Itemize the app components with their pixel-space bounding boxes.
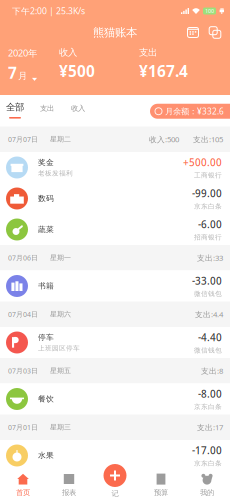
button[interactable]: 切换账本 (209, 26, 221, 38)
staticText: 收入:500 (149, 134, 179, 144)
staticText: 老板发福利 (38, 169, 73, 178)
button[interactable]: 支出 (32, 95, 62, 126)
staticText: 07月07日 (8, 134, 38, 144)
staticText: 07月03日 (8, 366, 38, 375)
staticText: 下午2:00 | 25.3K/s (12, 5, 85, 17)
staticText: 星期六 (50, 310, 71, 319)
button[interactable]: 首页 (0, 470, 46, 500)
staticText: 收入 (59, 47, 77, 58)
staticText: 水果 (38, 451, 54, 460)
staticText: 支出:4.4 (195, 309, 223, 319)
button[interactable]: 我的 (184, 470, 230, 500)
staticText: 100 (205, 7, 214, 15)
staticText: 微信钱包 (194, 290, 222, 298)
staticText: 记 (111, 489, 118, 498)
staticText: 7 (8, 62, 17, 83)
staticText: 2020年 (8, 47, 37, 59)
staticText: 上班园区停车 (38, 344, 80, 353)
staticText: 星期二 (50, 135, 71, 144)
button[interactable]: 2020年 (8, 47, 59, 83)
staticText: 报表 (62, 488, 76, 497)
staticText: 支出:17 (197, 422, 223, 432)
button[interactable]: 全部 (5, 95, 25, 126)
staticText: -4.40 (198, 330, 222, 344)
staticText: 数码 (38, 194, 54, 203)
staticText: 支出:33 (197, 252, 223, 263)
button[interactable]: 停车 (0, 327, 230, 358)
staticText: 停车 (38, 332, 54, 342)
button[interactable]: 预算 (138, 470, 184, 500)
button[interactable]: 月余额：¥332.6 (150, 104, 230, 119)
staticText: 星期五 (50, 366, 71, 375)
staticText: -8.00 (198, 387, 222, 400)
button[interactable]: 奖金 (0, 152, 230, 183)
button[interactable]: 收入 (63, 95, 93, 126)
button[interactable]: 记一笔 (92, 470, 138, 500)
staticText: -6.00 (198, 217, 222, 231)
staticText: ¥500 (59, 60, 95, 81)
staticText: 支出 (40, 104, 54, 113)
staticText: 支出 (139, 47, 157, 58)
staticText: -99.00 (192, 186, 222, 200)
staticText: +500.00 (183, 155, 222, 169)
staticText: 首页 (16, 488, 30, 497)
staticText: 京东白条 (194, 459, 222, 467)
staticText: 星期三 (50, 423, 71, 432)
staticText: 微信钱包 (194, 346, 222, 354)
button[interactable]: 书籍 (0, 270, 230, 301)
staticText: ¥167.4 (139, 60, 188, 81)
staticText: 收入 (71, 104, 85, 113)
staticText: 07月04日 (8, 309, 38, 319)
staticText: 支出:105 (193, 134, 223, 144)
staticText: 预算 (154, 488, 168, 497)
staticText: 星期一 (50, 253, 71, 262)
staticText: 书籍 (38, 281, 54, 291)
staticText: 全部 (6, 101, 24, 113)
staticText: 支出:8 (201, 365, 223, 376)
staticText: 07月06日 (8, 253, 38, 262)
staticText: 京东白条 (194, 403, 222, 411)
staticText: 奖金 (38, 157, 54, 167)
staticText: -33.00 (192, 274, 222, 287)
button[interactable]: 餐饮 (0, 383, 230, 414)
button[interactable]: 日历 (187, 26, 199, 38)
staticText: 月余额：¥332.6 (165, 106, 224, 117)
staticText: 熊猫账本 (93, 25, 137, 40)
staticText: 招商银行 (194, 233, 222, 241)
button[interactable]: 数码 (0, 183, 230, 214)
button[interactable]: 水果 (0, 440, 230, 471)
staticText: 月 (18, 70, 27, 82)
staticText: 工商银行 (194, 171, 222, 179)
staticText: 蔬菜 (38, 225, 54, 234)
staticText: 07月01日 (8, 422, 38, 432)
staticText: 我的 (200, 488, 214, 497)
button[interactable]: 报表 (46, 470, 92, 500)
staticText: 餐饮 (38, 394, 54, 404)
button[interactable]: 蔬菜 (0, 214, 230, 245)
staticText: -17.00 (192, 443, 222, 457)
staticText: 京东白条 (194, 202, 222, 210)
